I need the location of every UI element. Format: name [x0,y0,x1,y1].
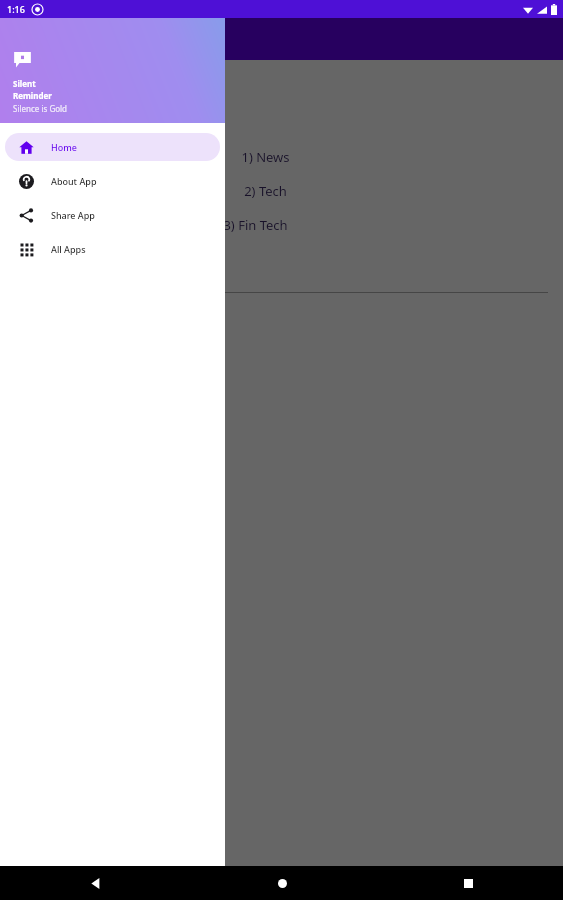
button[interactable]: Share App [5,201,220,229]
button[interactable]: Back [78,866,112,900]
staticText: Silence is Gold [13,103,68,114]
staticText: 3) Fin Tech [0,216,511,234]
button[interactable]: Home [5,133,220,161]
button[interactable]: About App [5,167,220,195]
staticText: 1) News [0,148,531,166]
staticText: About App [51,175,97,187]
staticText: 2) Tech [0,182,531,200]
staticText: Reminder [13,90,52,101]
button[interactable]: Recent apps [451,866,485,900]
staticText: 1:16 [7,3,25,15]
staticText: I use empty lines between text [16,114,203,132]
staticText: Home [51,141,77,153]
button[interactable]: All Apps [5,235,220,263]
staticText: Here is example text [16,80,141,98]
staticText: Silent [13,78,36,89]
button[interactable]: Home [265,866,299,900]
staticText: All Apps [51,243,86,255]
staticText: Share App [51,209,95,221]
